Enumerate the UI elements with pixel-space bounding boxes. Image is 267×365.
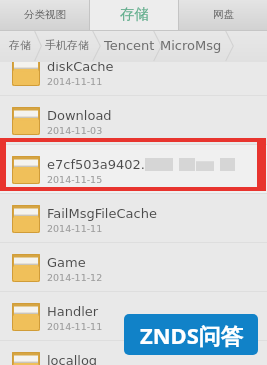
button[interactable]: e7cf503a9402.	[0, 145, 267, 194]
button[interactable]: 存储	[6, 30, 34, 62]
other: ZNDS watermark	[124, 314, 258, 355]
staticText: MicroMsg	[160, 38, 222, 53]
button[interactable]: Handler	[0, 292, 267, 341]
staticText: 存储	[9, 38, 31, 52]
staticText: Tencent	[104, 38, 155, 53]
button[interactable]: 网盘	[179, 0, 267, 30]
staticText: Game	[47, 255, 86, 270]
button[interactable]: Tencent	[101, 30, 158, 62]
button[interactable]: 存储	[89, 0, 179, 30]
staticText: 2014-11-11	[47, 76, 103, 87]
button[interactable]: 手机存储	[42, 30, 92, 62]
button[interactable]: Download	[0, 96, 267, 145]
button[interactable]: 分类视图	[0, 0, 89, 30]
staticText: diskCache	[47, 59, 114, 74]
staticText: 手机存储	[45, 38, 89, 52]
staticText: 网盘	[213, 8, 234, 21]
staticText: 存储	[120, 5, 149, 23]
staticText: 2014-11-12	[47, 272, 103, 283]
button[interactable]: Game	[0, 243, 267, 292]
staticText: 分类视图	[24, 8, 66, 21]
staticText: ZNDS问答	[140, 320, 243, 350]
staticText: locallog	[47, 353, 98, 365]
button[interactable]: diskCache	[0, 47, 267, 96]
staticText: e7cf503a9402.	[47, 157, 145, 172]
staticText: Download	[47, 108, 112, 123]
staticText: 2014-11-11	[47, 223, 103, 234]
staticText: 2014-11-03	[47, 125, 103, 136]
button[interactable]: FailMsgFileCache	[0, 194, 267, 243]
staticText: 2014-11-15	[47, 174, 103, 185]
button[interactable]: locallog	[0, 341, 267, 365]
staticText: FailMsgFileCache	[47, 206, 157, 221]
staticText: 2014-11-11	[47, 321, 103, 332]
staticText: Handler	[47, 304, 99, 319]
button[interactable]: MicroMsg	[157, 30, 225, 62]
